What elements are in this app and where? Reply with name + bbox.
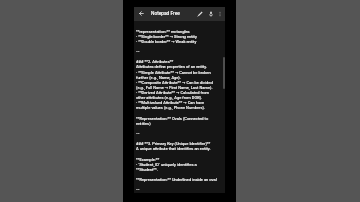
staticText: **Representation:** Ovals (Connected to …	[136, 111, 211, 151]
button[interactable]: Navigate up	[135, 7, 147, 19]
button[interactable]: Voice input	[204, 7, 217, 20]
button[interactable]: Edit	[193, 7, 206, 20]
staticText: - **Simple Attribute** → Cannot be broke…	[136, 70, 213, 110]
staticText: **Example:** - `Student_ID` uniquely ide…	[136, 152, 217, 192]
staticText: **representation:** rectangles - **Singl…	[136, 29, 207, 69]
button[interactable]: More options	[213, 7, 226, 20]
staticText: Notepad Free	[151, 11, 180, 17]
